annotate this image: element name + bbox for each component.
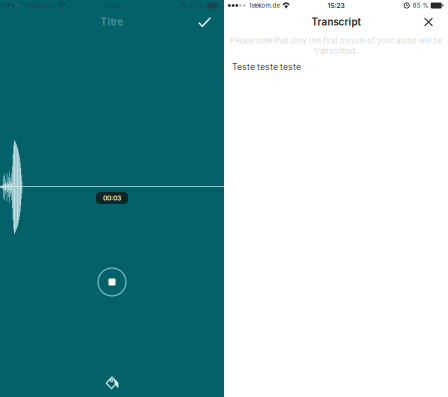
button[interactable]: Stop recording bbox=[90, 260, 134, 304]
staticText: 85 % bbox=[413, 2, 429, 9]
staticText: 15:23 bbox=[103, 1, 120, 10]
staticText: Teste teste teste bbox=[232, 61, 301, 72]
staticText: Telekom.de bbox=[249, 2, 280, 9]
staticText: Transcript bbox=[311, 16, 360, 28]
button[interactable]: Close bbox=[416, 11, 448, 32]
button[interactable]: Add tag bbox=[99, 370, 125, 396]
staticText: transcribed. bbox=[314, 46, 358, 55]
staticText: Titre bbox=[100, 16, 123, 28]
button[interactable]: Save bbox=[190, 12, 224, 32]
staticText: 15:23 bbox=[327, 1, 344, 10]
staticText: 00:03 bbox=[103, 194, 121, 202]
staticText: 85 % bbox=[189, 2, 205, 9]
staticText: Please note that only the first minute o… bbox=[230, 36, 442, 45]
staticText: Telekom.de bbox=[25, 2, 56, 9]
